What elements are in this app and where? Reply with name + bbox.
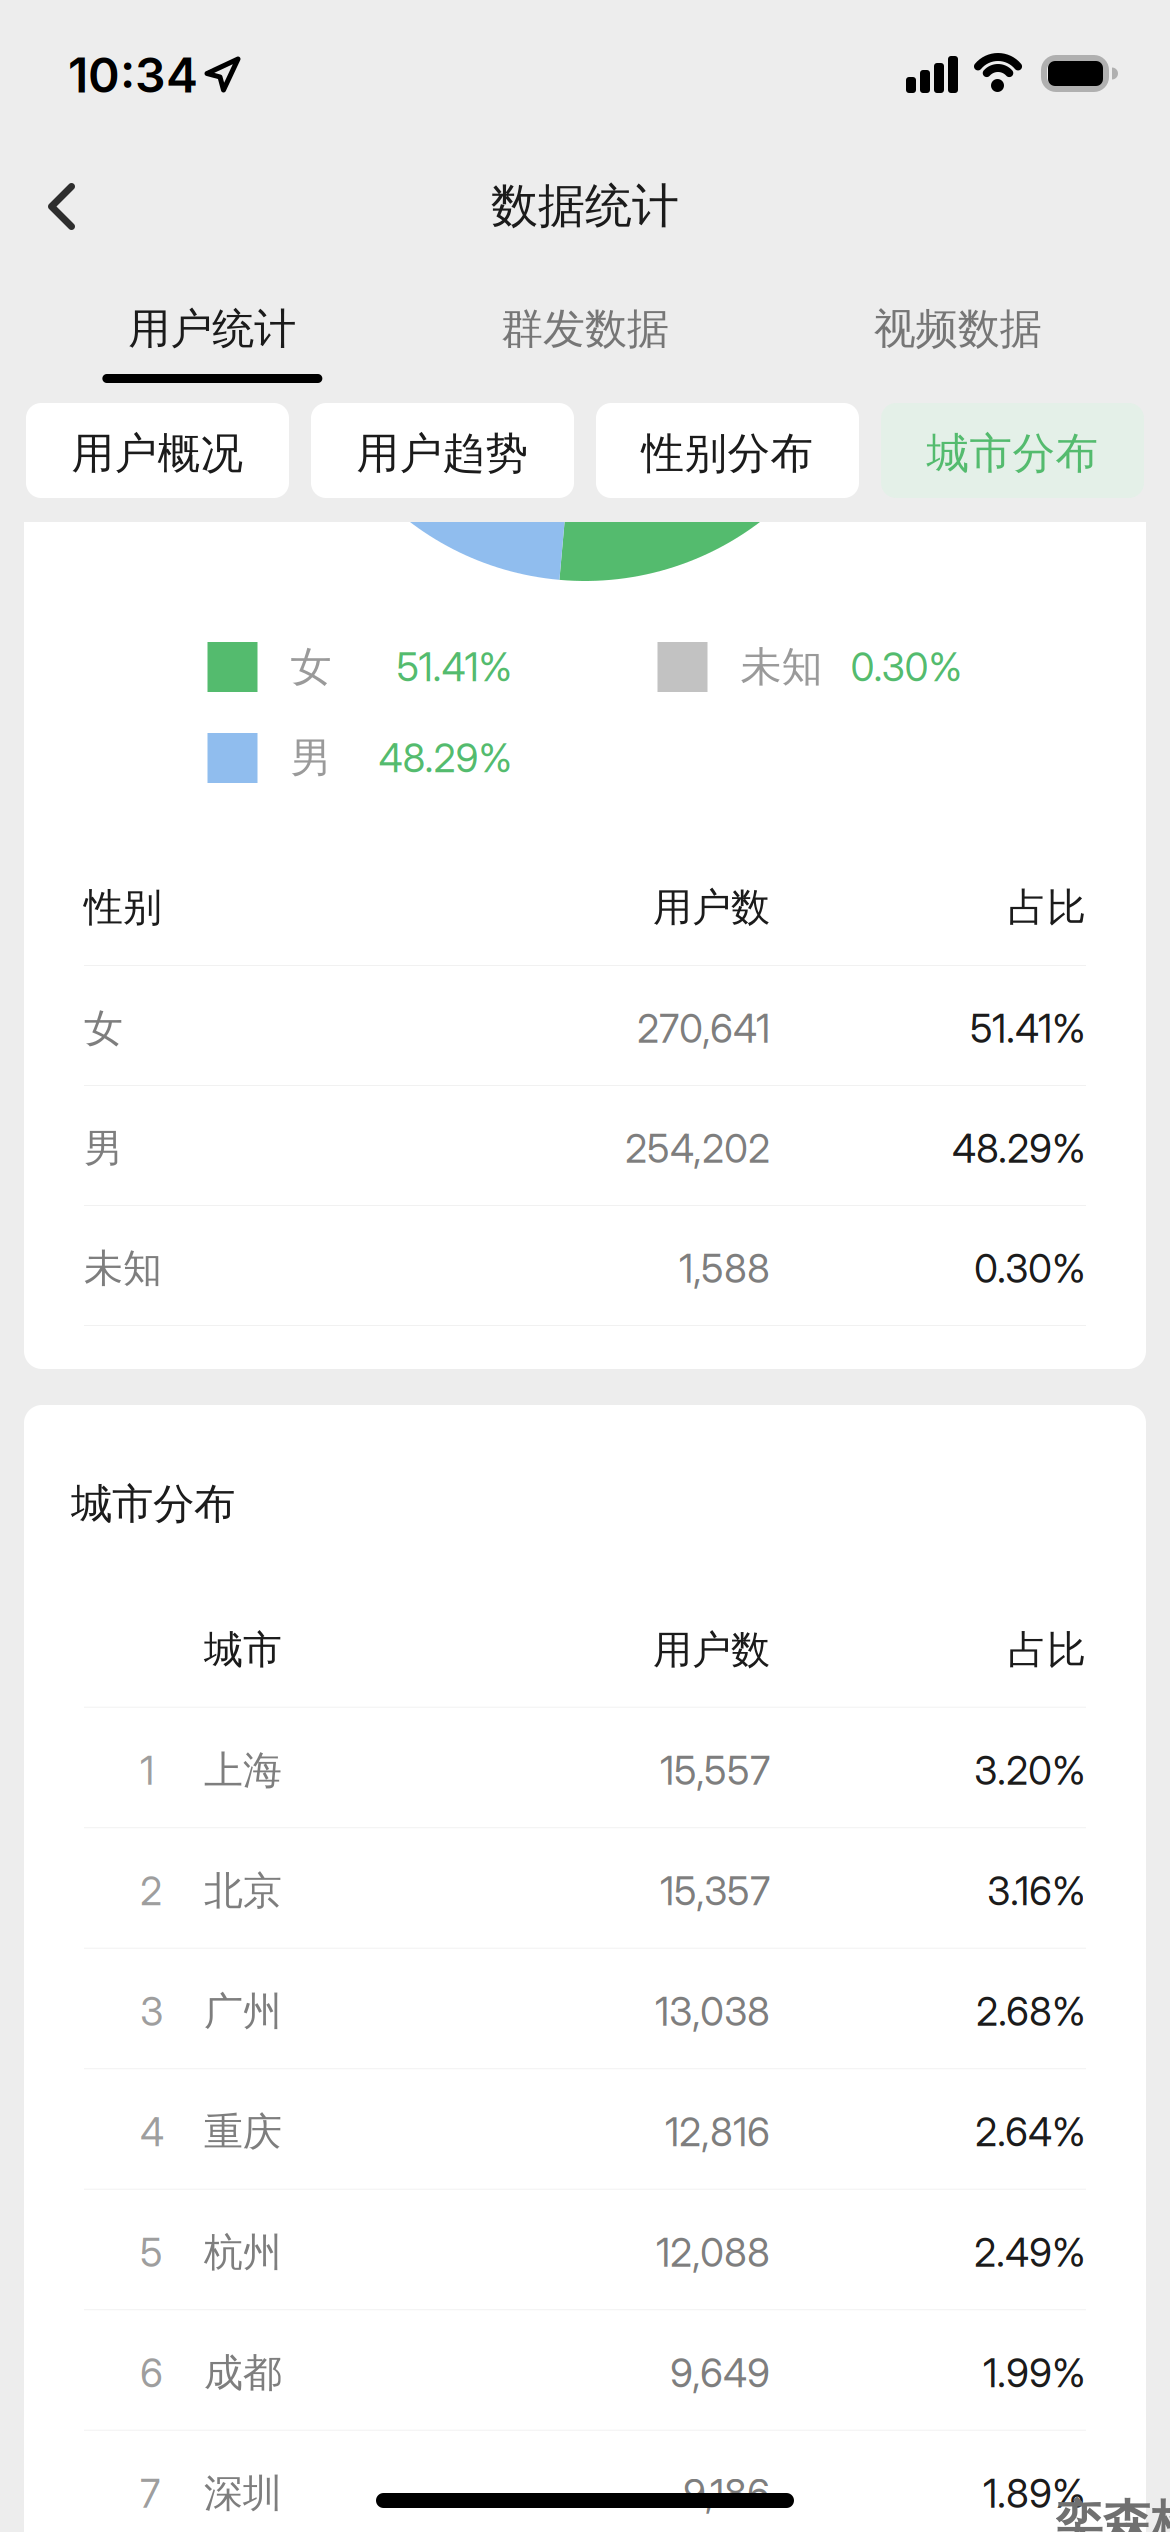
staticText: 13,038 — [655, 1988, 770, 2035]
staticText: 重庆 — [204, 2107, 282, 2156]
staticText: 2.49% — [974, 2229, 1086, 2276]
staticText: 48.29% — [378, 734, 512, 781]
staticText: 2.68% — [976, 1988, 1086, 2035]
staticText: 女 — [84, 1004, 123, 1053]
staticText: 性别分布 — [641, 427, 813, 480]
button[interactable]: 视频数据 — [771, 296, 1144, 356]
button[interactable]: 返回 — [15, 161, 105, 251]
staticText: 用户数 — [653, 1625, 770, 1674]
staticText: 9,186 — [683, 2470, 770, 2517]
staticText: 10:34 — [68, 46, 198, 104]
staticText: 数据统计 — [491, 176, 679, 235]
staticText: 1.89% — [983, 2470, 1086, 2517]
staticText: 未知 — [740, 641, 822, 693]
staticText: 3.16% — [987, 1867, 1086, 1914]
staticText: 15,357 — [660, 1867, 770, 1914]
staticText: 用户概况 — [71, 427, 243, 480]
staticText: 奕森格 — [1055, 2493, 1170, 2532]
staticText: 男 — [290, 732, 331, 784]
staticText: 0.30% — [974, 1245, 1086, 1292]
staticText: 3.20% — [974, 1747, 1086, 1794]
button[interactable]: 性别分布 — [596, 403, 859, 498]
staticText: 性别 — [84, 883, 162, 932]
staticText: 5 — [140, 2229, 163, 2276]
staticText: 视频数据 — [874, 302, 1042, 355]
button[interactable]: 城市分布 — [881, 403, 1144, 498]
staticText: 48.29% — [952, 1125, 1086, 1172]
staticText: 6 — [140, 2349, 163, 2396]
staticText: 12,088 — [656, 2229, 770, 2276]
staticText: 3 — [140, 1988, 163, 2035]
staticText: 女 — [290, 641, 331, 693]
staticText: 占比 — [1008, 1625, 1086, 1674]
staticText: 城市分布 — [926, 427, 1098, 480]
staticText: 上海 — [204, 1746, 282, 1795]
staticText: 270,641 — [637, 1005, 770, 1052]
staticText: 用户趋势 — [356, 427, 528, 480]
staticText: 城市分布 — [71, 1478, 235, 1530]
staticText: 北京 — [204, 1866, 282, 1915]
staticText: 9,649 — [670, 2349, 770, 2396]
staticText: 用户统计 — [128, 302, 296, 355]
staticText: 杭州 — [204, 2228, 282, 2277]
staticText: 广州 — [204, 1987, 282, 2036]
staticText: 51.41% — [396, 643, 512, 690]
staticText: 254,202 — [625, 1125, 770, 1172]
staticText: 用户数 — [653, 883, 770, 932]
staticText: 1 — [140, 1747, 154, 1794]
button[interactable]: 群发数据 — [399, 296, 771, 356]
staticText: 成都 — [204, 2348, 282, 2397]
staticText: 0.30% — [850, 643, 962, 690]
button[interactable]: 用户概况 — [26, 403, 289, 498]
staticText: 7 — [140, 2470, 160, 2517]
staticText: 男 — [84, 1124, 123, 1173]
staticText: 4 — [140, 2108, 164, 2155]
staticText: 1.99% — [983, 2349, 1086, 2396]
staticText: 未知 — [84, 1244, 162, 1293]
staticText: 15,557 — [660, 1747, 770, 1794]
staticText: 城市 — [204, 1625, 282, 1674]
staticText: 2 — [140, 1867, 162, 1914]
staticText: 群发数据 — [501, 302, 669, 355]
staticText: 2.64% — [975, 2108, 1086, 2155]
button[interactable]: 用户统计 — [26, 296, 399, 356]
staticText: 12,816 — [665, 2108, 770, 2155]
button[interactable]: 用户趋势 — [311, 403, 574, 498]
staticText: 占比 — [1008, 883, 1086, 932]
staticText: 51.41% — [970, 1005, 1086, 1052]
staticText: 1,588 — [679, 1245, 770, 1292]
staticText: 深圳 — [204, 2469, 282, 2518]
